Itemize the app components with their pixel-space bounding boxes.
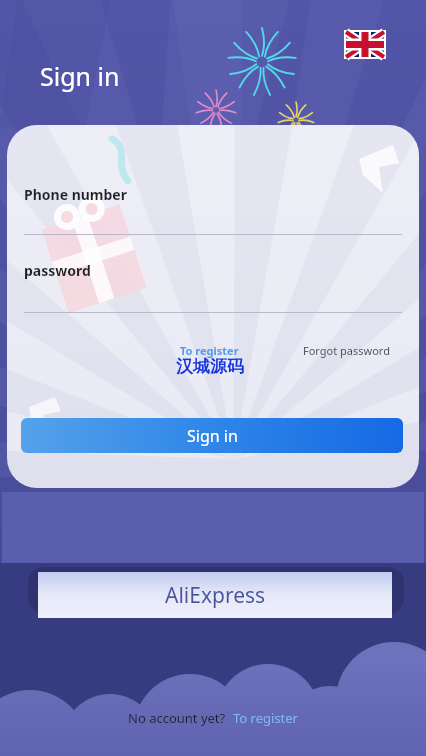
- button[interactable]: password: [7, 245, 419, 295]
- button[interactable]: Forgot password: [303, 343, 390, 358]
- button[interactable]: To register: [233, 709, 298, 727]
- staticText: 汉城源码: [176, 356, 244, 377]
- button[interactable]: To register: [180, 343, 239, 358]
- staticText: AliExpress: [165, 581, 266, 610]
- staticText: Sign in: [187, 425, 238, 447]
- button[interactable]: [28, 567, 404, 614]
- staticText: Sign in: [40, 59, 120, 93]
- staticText: No account yet?: [128, 709, 226, 727]
- staticText: To register: [233, 709, 298, 727]
- staticText: To register: [180, 343, 239, 358]
- button[interactable]: Language: English: [344, 30, 386, 59]
- button[interactable]: Sign in: [21, 418, 403, 453]
- staticText: Phone number: [24, 185, 127, 204]
- button[interactable]: AliExpress: [38, 572, 392, 618]
- staticText: Forgot password: [303, 343, 390, 358]
- staticText: password: [24, 261, 91, 280]
- button[interactable]: Phone number: [7, 169, 419, 219]
